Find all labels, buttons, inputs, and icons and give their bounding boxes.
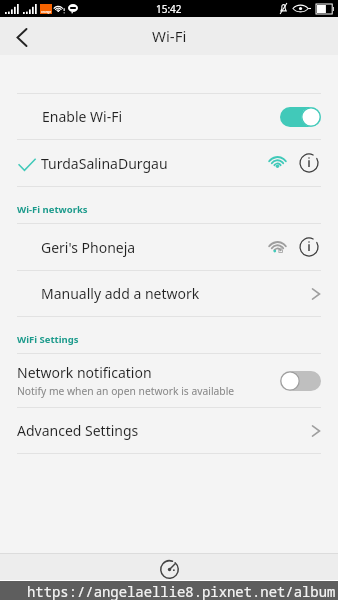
staticText: https://angelaellie8.pixnet.net/album xyxy=(27,582,336,600)
button[interactable]: Network details xyxy=(295,233,323,261)
button[interactable]: Off xyxy=(280,371,321,391)
button[interactable]: Manually add a network xyxy=(0,271,338,316)
other: Signal strength xyxy=(264,232,290,262)
other: Signal strength xyxy=(264,148,290,178)
button[interactable]: Geri's Phoneja xyxy=(0,224,338,270)
staticText: Advanced Settings xyxy=(17,421,139,440)
staticText: Wi-Fi xyxy=(152,26,187,46)
button[interactable]: Enable Wi-Fi xyxy=(0,94,338,139)
button[interactable]: Advanced Settings xyxy=(0,408,338,453)
button[interactable]: Speed test xyxy=(156,554,183,580)
staticText: Geri's Phoneja xyxy=(41,238,136,257)
button[interactable]: On xyxy=(280,107,321,127)
button[interactable]: Network notification xyxy=(0,354,338,407)
staticText: Notify me when an open network is availa… xyxy=(17,384,235,398)
staticText: TurdaSalinaDurgau xyxy=(41,154,168,173)
staticText: WiFi Settings xyxy=(17,333,79,346)
staticText: Wi-Fi networks xyxy=(17,203,88,216)
staticText: Network notification xyxy=(17,363,152,382)
staticText: 15:42 xyxy=(156,2,182,16)
button[interactable]: TurdaSalinaDurgau xyxy=(0,140,338,186)
button[interactable]: Back xyxy=(0,17,44,55)
staticText: orange xyxy=(41,10,52,14)
staticText: Enable Wi-Fi xyxy=(42,107,123,126)
button[interactable]: Network details xyxy=(295,149,323,177)
staticText: Manually add a network xyxy=(41,284,200,303)
